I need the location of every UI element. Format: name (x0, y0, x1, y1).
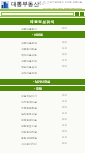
staticText: 탄현동큰마을 (21, 118, 37, 121)
staticText: · 상가사무실 (33, 80, 51, 84)
staticText: 매매 (62, 41, 67, 44)
button[interactable]: 강촌동아청솔 (0, 45, 85, 51)
staticText: 매매 (62, 142, 67, 145)
button[interactable]: 정발산밤가시 (0, 92, 85, 98)
button[interactable]: 매 물 정 보 검 색 (0, 18, 85, 25)
button[interactable]: · 아파트 (0, 31, 85, 38)
staticText: 전세 (62, 124, 67, 127)
staticText: 전세 (62, 59, 67, 62)
staticText: 대통부동산 (11, 1, 39, 8)
button[interactable]: 탄현동큰마을 (0, 116, 85, 122)
button[interactable]: 강촌마을우방 (0, 57, 85, 63)
button[interactable] (1, 12, 74, 16)
button[interactable]: 풍동성원떼빌 (0, 134, 85, 140)
button[interactable]: 대화동성저말 (0, 128, 85, 134)
staticText: 백송마을삼성 (21, 65, 37, 68)
staticText: 경기도 고양시 일산동구 마두동 강촌마을상가 (39, 0, 83, 6)
staticText: 백마마을극동 (21, 53, 37, 56)
button[interactable]: 백마마을극동 (0, 51, 85, 57)
staticText: 전세 (62, 136, 67, 139)
staticText: 강촌마을한양 (21, 41, 37, 44)
button[interactable]: 강촌마을한양 (0, 39, 85, 45)
staticText: 정발산밤가시 (21, 94, 37, 97)
staticText: 강촌동아청솔 (21, 47, 37, 50)
staticText: 매매 (62, 106, 67, 109)
staticText: 매매 (62, 53, 67, 56)
button[interactable]: 장항동호수말 (0, 122, 85, 128)
button[interactable]: · 주택 (0, 86, 85, 91)
staticText: 장항동호수말 (21, 124, 37, 127)
button[interactable]: Home (1, 1, 9, 9)
staticText: 매 물 정 보 검 색 (30, 19, 55, 24)
button[interactable]: 일산동후곡말 (0, 110, 85, 116)
staticText: 전세 (62, 112, 67, 115)
staticText: 식사동위시티 (21, 142, 37, 145)
staticText: 대화동성저말 (21, 130, 37, 133)
staticText: 전세 (62, 47, 67, 50)
button[interactable]: 주엽동문촌말 (0, 104, 85, 110)
staticText: 강촌마을우방 (21, 59, 37, 62)
staticText: 매매 (62, 130, 67, 133)
button[interactable]: 마두동백마골 (0, 98, 85, 104)
button[interactable]: 백송마을삼성 (0, 63, 85, 69)
staticText: 일산동후곡말 (21, 112, 37, 115)
staticText: 전세 (62, 100, 67, 103)
staticText: 매매 (62, 65, 67, 68)
staticText: · 아파트 (32, 33, 43, 37)
staticText: · 주택 (34, 87, 42, 91)
staticText: 마두동백마골 (21, 100, 37, 103)
staticText: 강선마을유원 (21, 71, 37, 74)
staticText: 매매 (62, 94, 67, 97)
staticText: 매매 (62, 118, 67, 121)
staticText: 매매 (62, 27, 67, 30)
button[interactable]: · 상가사무실 (0, 79, 85, 85)
button[interactable]: 강촌마을동아 (0, 25, 85, 31)
button[interactable]: 강선마을유원 (0, 69, 85, 75)
staticText: 풍동성원떼빌 (21, 136, 37, 139)
staticText: TEL.031-907-7890 www.daetong.kr (43, 6, 83, 9)
staticText: 강촌마을동아 (21, 27, 37, 30)
button[interactable]: 식사동위시티 (0, 140, 85, 146)
staticText: 주엽동문촌말 (21, 106, 37, 109)
